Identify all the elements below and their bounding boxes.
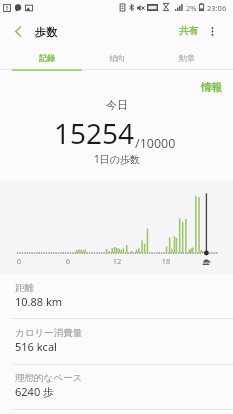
button[interactable]: 共有 (172, 15, 205, 47)
staticText: 共有 (179, 25, 198, 37)
staticText: 12 (107, 256, 127, 266)
staticText: 今日 (106, 98, 128, 112)
button[interactable]: Back (1, 15, 35, 47)
staticText: 記録 (39, 53, 55, 63)
button[interactable]: 勲章 (152, 47, 222, 71)
staticText: 情報 (201, 81, 222, 94)
staticText: 1日の歩数 (94, 152, 140, 166)
staticText: 516 kcal (15, 339, 57, 354)
staticText: 10.88 km (15, 294, 63, 309)
staticText: 0 (9, 256, 29, 266)
button[interactable]: 理想的なペース (0, 364, 233, 409)
button[interactable]: More options (198, 17, 226, 45)
staticText: 6 (58, 256, 78, 266)
staticText: 15254 (54, 114, 135, 152)
staticText: カロリー消費量 (15, 327, 83, 339)
staticText: 勲章 (179, 53, 195, 63)
button[interactable]: 距離 (0, 274, 233, 319)
staticText: 傾向 (109, 53, 125, 63)
staticText: 理想的なペース (15, 372, 83, 384)
staticText: 6240 歩 (15, 384, 55, 399)
button[interactable]: カロリー消費量 (0, 319, 233, 364)
button[interactable]: 傾向 (82, 47, 152, 71)
staticText: 18 (156, 256, 176, 266)
button[interactable]: 情報 (196, 77, 227, 98)
staticText: 歩数 (35, 25, 57, 39)
staticText: 2% (186, 3, 197, 13)
staticText: /10000 (135, 135, 176, 152)
button[interactable]: 記録 (12, 47, 82, 71)
staticText: 23:06 (207, 3, 227, 13)
staticText: 距離 (15, 282, 34, 294)
